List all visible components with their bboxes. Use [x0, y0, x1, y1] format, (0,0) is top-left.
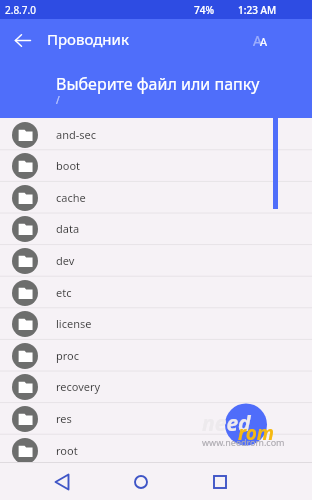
button[interactable]: Back	[45, 465, 78, 498]
button[interactable]: cache	[0, 182, 312, 213]
staticText: license	[56, 316, 92, 331]
button[interactable]: license	[0, 308, 312, 339]
staticText: proc	[56, 348, 80, 363]
staticText: dev	[56, 253, 75, 268]
staticText: and-sec	[56, 127, 97, 142]
staticText: www.needrom.com	[202, 436, 285, 448]
button[interactable]: Home	[124, 465, 157, 498]
button[interactable]: Change text size	[247, 23, 279, 55]
button[interactable]: recovery	[0, 371, 312, 402]
button[interactable]: res	[0, 403, 312, 434]
staticText: Выберите файл или папку	[56, 73, 260, 95]
staticText: boot	[56, 158, 81, 173]
staticText: /	[56, 93, 60, 107]
staticText: recovery	[56, 379, 101, 394]
staticText: 2.8.7.0	[5, 3, 36, 17]
staticText: A	[253, 31, 262, 50]
button[interactable]: etc	[0, 277, 312, 308]
staticText: data	[56, 221, 80, 236]
button[interactable]: dev	[0, 245, 312, 276]
staticText: 1:23 AM	[238, 3, 277, 17]
button[interactable]: Recent apps	[203, 465, 236, 498]
staticText: res	[56, 411, 72, 426]
button[interactable]: and-sec	[0, 119, 312, 150]
staticText: root	[56, 443, 78, 458]
button[interactable]: Back	[6, 24, 38, 56]
staticText: Проводник	[47, 29, 129, 49]
staticText: etc	[56, 285, 72, 300]
staticText: need	[202, 409, 251, 438]
button[interactable]: boot	[0, 150, 312, 181]
button[interactable]: root	[0, 435, 312, 466]
staticText: A	[260, 34, 268, 49]
staticText: cache	[56, 190, 86, 205]
button[interactable]: data	[0, 213, 312, 244]
staticText: rom	[238, 420, 274, 446]
button[interactable]: proc	[0, 340, 312, 371]
staticText: 74%	[194, 3, 214, 17]
